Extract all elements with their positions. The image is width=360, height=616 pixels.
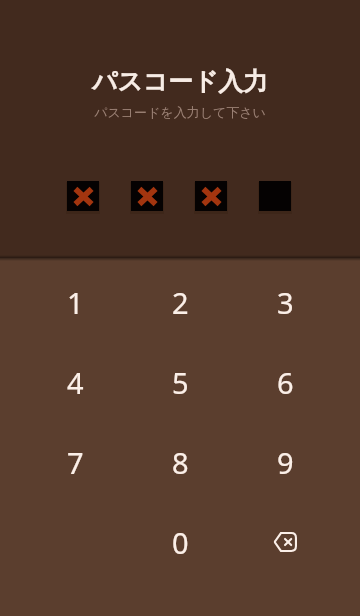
button[interactable]: 3 <box>250 262 320 342</box>
staticText: 7 <box>67 443 84 482</box>
button[interactable]: 8 <box>145 422 215 502</box>
staticText: 2 <box>172 283 189 322</box>
button[interactable]: 4 <box>40 342 110 422</box>
staticText: 3 <box>277 283 294 322</box>
button[interactable]: 9 <box>250 422 320 502</box>
staticText: 6 <box>277 363 294 402</box>
button[interactable]: Entered digit <box>67 181 99 211</box>
staticText: 5 <box>172 363 189 402</box>
staticText: 1 <box>67 283 84 322</box>
button[interactable]: 7 <box>40 422 110 502</box>
button[interactable]: Backspace <box>250 502 320 582</box>
button[interactable]: 1 <box>40 262 110 342</box>
staticText: パスコードを入力して下さい <box>94 104 266 120</box>
staticText: パスコード入力 <box>92 66 268 97</box>
button[interactable]: Entered digit <box>131 181 163 211</box>
button[interactable]: 2 <box>145 262 215 342</box>
button[interactable]: Entered digit <box>195 181 227 211</box>
button[interactable]: 5 <box>145 342 215 422</box>
staticText: 0 <box>172 523 189 562</box>
staticText: 8 <box>172 443 189 482</box>
button[interactable]: 0 <box>145 502 215 582</box>
button[interactable]: 6 <box>250 342 320 422</box>
staticText: 9 <box>277 443 294 482</box>
staticText: 4 <box>67 363 84 402</box>
